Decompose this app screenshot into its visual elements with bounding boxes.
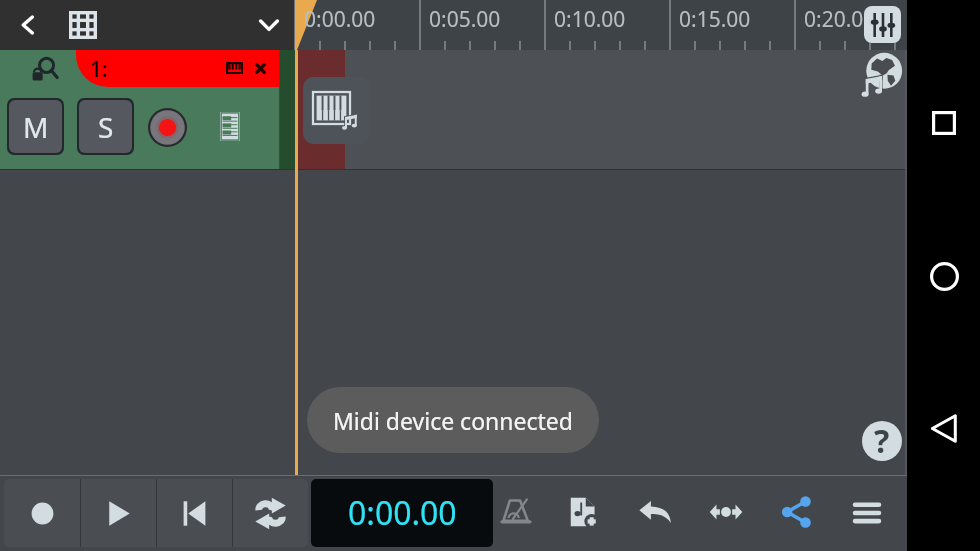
button[interactable]: Menu	[848, 493, 886, 531]
button[interactable]: 0:00.00	[311, 479, 493, 547]
button[interactable]: Piano roll	[220, 112, 240, 141]
button[interactable]: M	[9, 100, 62, 153]
button[interactable]: Add MIDI track	[303, 77, 370, 144]
button[interactable]: Back	[923, 407, 965, 449]
staticText: 0:00.00	[348, 491, 457, 535]
button[interactable]: Back	[8, 0, 48, 50]
button[interactable]: Share	[778, 493, 816, 531]
button[interactable]: Metronome	[497, 493, 535, 531]
button[interactable]: Play	[80, 479, 156, 547]
button[interactable]: Import file	[564, 493, 602, 531]
staticText: ?	[874, 421, 890, 459]
staticText: 0:05.00	[429, 5, 501, 34]
staticText: 0:15.00	[679, 5, 751, 34]
button[interactable]: Loop	[232, 479, 308, 547]
button[interactable]: Lock zoom	[29, 55, 59, 85]
button[interactable]: Recent apps	[923, 102, 965, 144]
staticText: M	[23, 108, 49, 146]
button[interactable]: Grid	[62, 0, 104, 50]
button[interactable]: Browse loops	[853, 50, 905, 102]
staticText: S	[98, 108, 114, 146]
staticText: 0:10.00	[554, 5, 626, 34]
button[interactable]: Arm record	[148, 108, 187, 147]
staticText: 0:20.00	[804, 5, 876, 34]
button[interactable]: Track instrument	[221, 56, 247, 80]
staticText: 1:	[90, 55, 108, 84]
button[interactable]: Record	[4, 479, 80, 547]
button[interactable]: S	[79, 100, 132, 153]
button[interactable]: Mixer	[864, 6, 901, 43]
staticText: 0:00.00	[304, 5, 376, 34]
button[interactable]: Rewind	[156, 479, 232, 547]
button[interactable]: Expand	[248, 0, 290, 50]
button[interactable]: Help	[862, 421, 902, 461]
button[interactable]: 1:	[76, 50, 279, 87]
button[interactable]: Home	[923, 255, 965, 297]
button[interactable]: Undo	[636, 493, 674, 531]
button[interactable]: Close track	[248, 56, 272, 80]
button[interactable]: Move	[707, 493, 745, 531]
staticText: Midi device connected	[333, 405, 573, 436]
